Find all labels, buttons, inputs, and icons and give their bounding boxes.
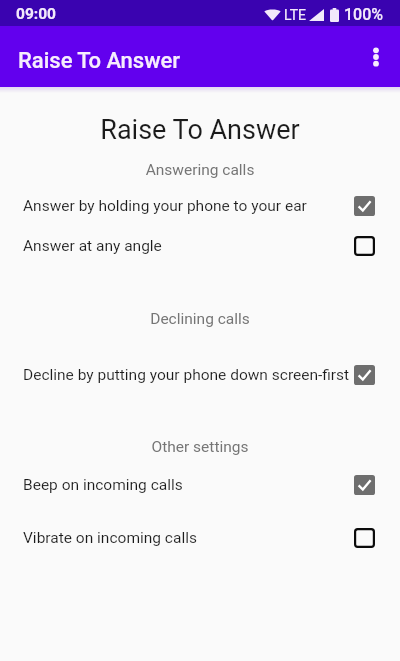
staticText: Beep on incoming calls — [23, 476, 183, 494]
button[interactable]: More options — [354, 35, 398, 79]
staticText: Decline by putting your phone down scree… — [23, 366, 350, 384]
staticText: LTE — [284, 7, 306, 23]
staticText: Answering calls — [0, 161, 400, 179]
staticText: 09:00 — [16, 5, 56, 23]
button[interactable]: Answer at any angle — [0, 226, 400, 266]
button[interactable]: Vibrate on incoming calls — [0, 518, 400, 558]
button[interactable]: Beep on incoming calls — [0, 465, 400, 505]
staticText: Answer by holding your phone to your ear — [23, 197, 307, 215]
staticText: Raise To Answer — [18, 48, 181, 74]
button[interactable]: Answer by holding your phone to your ear — [0, 186, 400, 226]
staticText: Other settings — [0, 438, 400, 456]
staticText: Declining calls — [0, 310, 400, 328]
button[interactable]: Decline by putting your phone down scree… — [0, 355, 400, 395]
staticText: Vibrate on incoming calls — [23, 529, 197, 547]
staticText: Answer at any angle — [23, 237, 162, 255]
staticText: 100% — [344, 5, 384, 24]
staticText: Raise To Answer — [0, 114, 400, 146]
